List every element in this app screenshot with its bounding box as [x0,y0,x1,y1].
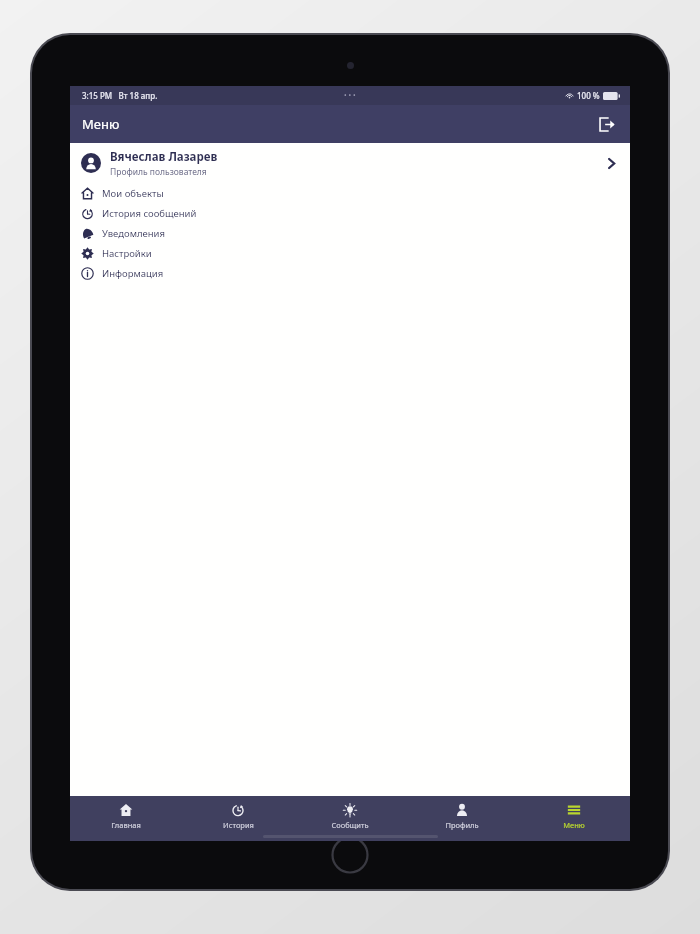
staticText: Главная [111,820,141,830]
button[interactable]: Вячеслав Лазарев [70,143,630,183]
button[interactable]: Уведомления [70,223,630,243]
button[interactable]: Мои объекты [70,183,630,203]
staticText: Вячеслав Лазарев [110,149,218,165]
staticText: Профиль [445,820,479,830]
staticText: Профиль пользователя [110,166,207,178]
staticText: Меню [82,115,120,133]
staticText: История сообщений [102,207,197,220]
staticText: Настройки [102,247,152,260]
staticText: • • • [344,91,356,101]
button[interactable]: Настройки [70,243,630,263]
staticText: 3:15 PM Вт 18 апр. [82,90,158,101]
staticText: Уведомления [102,227,165,240]
staticText: История [223,820,254,830]
button[interactable]: История [182,796,294,841]
staticText: Сообщить [331,820,369,830]
staticText: Информация [102,267,164,280]
staticText: 100 % [577,90,600,101]
button[interactable]: Сообщить [294,796,406,841]
staticText: Мои объекты [102,187,164,200]
button[interactable]: История сообщений [70,203,630,223]
button[interactable]: Профиль [406,796,518,841]
button[interactable]: Главная [70,796,182,841]
button[interactable]: Информация [70,263,630,283]
button[interactable]: Меню [518,796,630,841]
button[interactable]: Выйти [591,109,621,139]
staticText: Меню [563,820,585,830]
